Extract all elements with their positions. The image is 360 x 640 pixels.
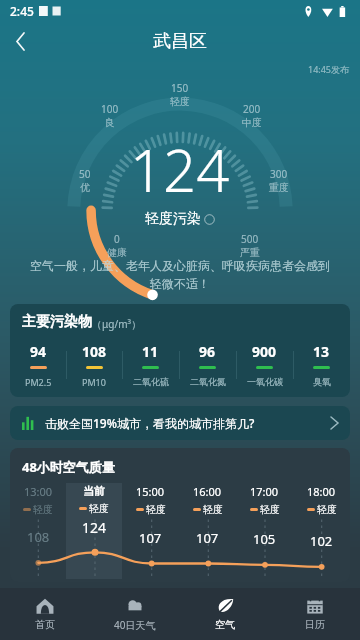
staticText: 94 [30, 342, 47, 361]
staticText: 优 [80, 181, 90, 194]
staticText: 108 [27, 528, 50, 546]
staticText: 16:00 [193, 484, 222, 499]
staticText: 中度 [242, 116, 262, 129]
staticText: 96 [199, 342, 216, 361]
staticText: （μg/m³） [92, 317, 141, 331]
staticText: 一氧化碳 [247, 376, 283, 387]
staticText: 轻度 [203, 503, 223, 516]
staticText: 124 [130, 130, 230, 209]
staticText: 18:00 [307, 484, 336, 499]
staticText: 200 [243, 102, 261, 116]
staticText: 武昌区 [153, 30, 207, 53]
staticText: 日历 [305, 618, 325, 631]
staticText: 15:00 [136, 484, 165, 499]
staticText: 二氧化氮 [190, 376, 226, 387]
staticText: 107 [139, 529, 162, 547]
staticText: 重度 [269, 181, 289, 194]
button[interactable]: 空气 [180, 588, 270, 640]
staticText: 108 [82, 342, 107, 361]
staticText: 11 [142, 342, 159, 361]
staticText: 良 [105, 116, 115, 129]
staticText: 40日天气 [114, 618, 156, 632]
staticText: 当前 [83, 484, 105, 498]
button[interactable]: 日历 [270, 588, 360, 640]
staticText: 空气 [215, 618, 235, 631]
staticText: 轻度 [260, 503, 280, 516]
button[interactable]: Back [0, 22, 42, 60]
staticText: PM10 [82, 376, 106, 388]
staticText: 300 [270, 167, 288, 181]
staticText: 严重 [240, 246, 260, 259]
staticText: 健康 [107, 246, 127, 259]
staticText: 100 [101, 102, 119, 116]
staticText: 轻度 [317, 503, 337, 516]
staticText: 击败全国19%城市，看我的城市排第几? [45, 415, 255, 431]
staticText: 空气一般，儿童、老年人及心脏病、呼吸疾病患者会感到轻微不适！ [28, 258, 332, 292]
staticText: 105 [253, 530, 276, 548]
staticText: 13:00 [24, 484, 53, 499]
button[interactable]: 击败全国19%城市，看我的城市排第几? [10, 406, 350, 440]
staticText: 48小时空气质量 [22, 458, 115, 476]
staticText: 轻度污染 [145, 210, 201, 228]
button[interactable]: 首页 [0, 588, 90, 640]
staticText: 102 [310, 532, 333, 550]
staticText: 臭氧 [313, 376, 331, 387]
button[interactable]: 40日天气 [90, 588, 180, 640]
staticText: 14:45发布 [308, 63, 350, 75]
staticText: 500 [241, 232, 259, 246]
staticText: 二氧化硫 [133, 376, 169, 387]
staticText: 首页 [35, 618, 55, 631]
staticText: 2:45 [10, 3, 34, 19]
staticText: 主要污染物 [22, 313, 92, 331]
staticText: 0 [114, 232, 120, 246]
staticText: 轻度 [89, 502, 109, 515]
staticText: 50 [79, 167, 91, 181]
button[interactable]: 主要污染物 [10, 304, 350, 397]
staticText: 轻度 [33, 503, 53, 516]
staticText: 107 [196, 529, 219, 547]
staticText: 轻度 [170, 95, 190, 108]
staticText: 17:00 [250, 484, 279, 499]
staticText: 150 [171, 81, 189, 95]
staticText: PM2.5 [25, 376, 52, 388]
staticText: 13 [313, 342, 330, 361]
staticText: 900 [252, 342, 277, 361]
staticText: 轻度 [146, 503, 166, 516]
staticText: 124 [82, 518, 107, 537]
